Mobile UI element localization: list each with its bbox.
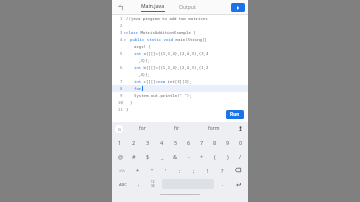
- button[interactable]: ;: [187, 163, 201, 177]
- button[interactable]: 5: [169, 135, 182, 149]
- staticText: 1: [120, 16, 123, 21]
- staticText: public static void main(String[]: [130, 37, 207, 42]
- button[interactable]: Google: [115, 125, 123, 133]
- button[interactable]: 3: [141, 135, 155, 149]
- button[interactable]: ,4}};: [112, 71, 248, 78]
- button[interactable]: 9: [112, 92, 248, 99]
- button[interactable]: 6: [182, 135, 195, 149]
- button[interactable]: $: [141, 149, 155, 163]
- staticText: ,3}};: [138, 58, 150, 63]
- staticText: class MatrixAdditionExample {: [126, 30, 196, 35]
- button[interactable]: fir: [172, 123, 182, 134]
- button[interactable]: 0: [234, 135, 247, 149]
- button[interactable]: 2: [127, 135, 141, 149]
- button[interactable]: ,3}};: [112, 57, 248, 64]
- button[interactable]: 3: [112, 29, 248, 36]
- staticText: 6: [120, 65, 123, 70]
- staticText: 0: [239, 139, 243, 146]
- staticText: 2: [120, 23, 123, 28]
- button[interactable]: 8: [208, 135, 221, 149]
- staticText: 11: [118, 107, 123, 112]
- staticText: ': [165, 167, 167, 174]
- button[interactable]: ": [145, 163, 159, 177]
- button[interactable]: 11: [112, 106, 248, 113]
- button[interactable]: (: [208, 149, 221, 163]
- staticText: -: [188, 153, 190, 160]
- button[interactable]: /: [234, 149, 247, 163]
- staticText: //java program to add two matrices: [126, 16, 208, 21]
- button[interactable]: 4: [112, 36, 248, 43]
- staticText: :: [179, 167, 181, 174]
- button[interactable]: for: [137, 123, 148, 134]
- staticText: ,4}};: [138, 72, 150, 77]
- button[interactable]: ?: [215, 163, 229, 177]
- button[interactable]: *: [131, 163, 145, 177]
- button[interactable]: @: [113, 149, 127, 163]
- button[interactable]: Undo: [115, 2, 126, 13]
- staticText: Run: [230, 111, 240, 118]
- button[interactable]: 4: [155, 135, 169, 149]
- staticText: 4: [120, 37, 123, 42]
- staticText: 1: [118, 139, 122, 146]
- button[interactable]: 1: [113, 135, 127, 149]
- button[interactable]: Backspace: [229, 163, 247, 177]
- button[interactable]: form: [206, 123, 222, 134]
- staticText: 8: [120, 86, 123, 91]
- button[interactable]: 9: [221, 135, 234, 149]
- button[interactable]: 7: [112, 78, 248, 85]
- button[interactable]: Enter: [229, 178, 247, 190]
- button[interactable]: #: [127, 149, 141, 163]
- staticText: form: [208, 125, 220, 132]
- button[interactable]: 1: [112, 15, 248, 22]
- staticText: &: [173, 153, 178, 160]
- staticText: .: [222, 181, 224, 188]
- button[interactable]: 2: [112, 22, 248, 29]
- button[interactable]: =\<: [113, 163, 131, 177]
- button[interactable]: ): [221, 149, 234, 163]
- staticText: ": [151, 167, 154, 174]
- staticText: int b[][]={{1,3,4},{2,4,3},{1,2: [134, 65, 209, 70]
- button[interactable]: 5: [112, 50, 248, 57]
- button[interactable]: 12 34: [145, 178, 160, 190]
- staticText: 10: [118, 100, 123, 105]
- staticText: 9: [226, 139, 230, 146]
- staticText: }: [126, 107, 129, 112]
- staticText: _: [161, 153, 164, 160]
- staticText: 7: [120, 79, 123, 84]
- button[interactable]: args) {: [112, 43, 248, 50]
- button[interactable]: 8: [112, 85, 248, 92]
- staticText: 6: [187, 139, 191, 146]
- button[interactable]: ': [159, 163, 173, 177]
- button[interactable]: +: [195, 149, 208, 163]
- button[interactable]: Output: [176, 3, 199, 12]
- button[interactable]: 7: [195, 135, 208, 149]
- button[interactable]: Voice input: [236, 124, 245, 133]
- button[interactable]: Run: [231, 3, 245, 12]
- button[interactable]: _: [155, 149, 169, 163]
- button[interactable]: :: [173, 163, 187, 177]
- button[interactable]: &: [169, 149, 182, 163]
- staticText: 12 34: [151, 180, 155, 188]
- staticText: 4: [160, 139, 164, 146]
- staticText: System.out.println(" ");: [134, 93, 192, 98]
- staticText: 3: [120, 30, 123, 35]
- staticText: 9: [120, 93, 123, 98]
- staticText: $: [146, 153, 150, 160]
- staticText: @: [118, 153, 123, 160]
- staticText: ?: [221, 167, 224, 174]
- button[interactable]: Run: [226, 110, 244, 119]
- staticText: 5: [120, 51, 123, 56]
- button[interactable]: ABC: [113, 178, 132, 190]
- staticText: /: [239, 153, 242, 160]
- staticText: for: [139, 125, 146, 132]
- staticText: Main.java: [141, 3, 165, 10]
- button[interactable]: 6: [112, 64, 248, 71]
- staticText: =\<: [119, 168, 126, 173]
- button[interactable]: ,: [132, 178, 145, 190]
- button[interactable]: !: [201, 163, 215, 177]
- button[interactable]: .: [216, 178, 229, 190]
- button[interactable]: Main.java: [138, 3, 168, 12]
- button[interactable]: 10: [112, 99, 248, 106]
- button[interactable]: -: [182, 149, 195, 163]
